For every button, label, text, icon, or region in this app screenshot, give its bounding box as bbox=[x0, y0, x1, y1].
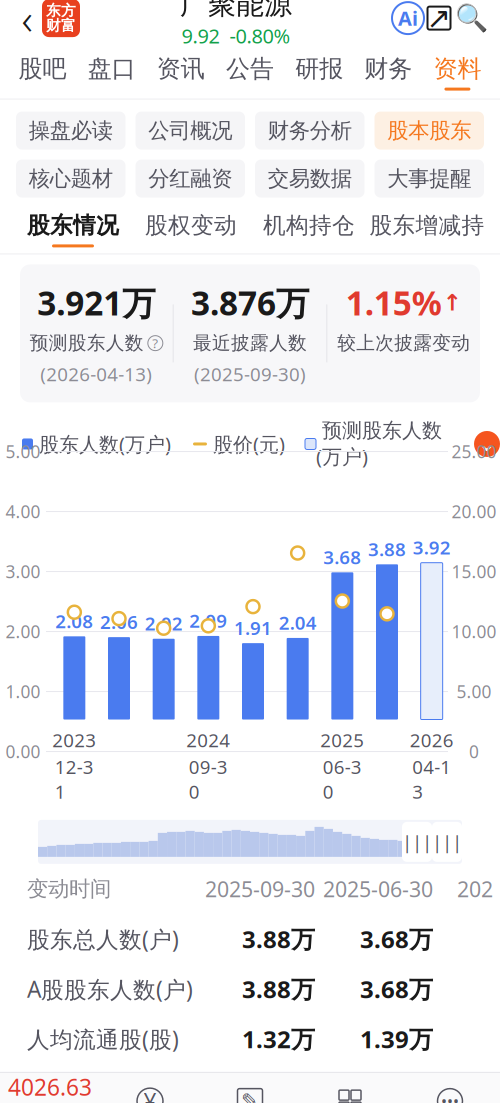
staticText: 10.00 bbox=[451, 620, 496, 643]
staticText: 预测股东人数(万户) bbox=[316, 418, 442, 469]
button[interactable]: Range handle right bbox=[432, 822, 462, 862]
button[interactable]: Range handle left bbox=[402, 822, 432, 862]
staticText: ‹ bbox=[21, 0, 32, 46]
button[interactable]: 股东情况 bbox=[14, 212, 132, 247]
staticText: ✎ bbox=[241, 1089, 259, 1103]
staticText: 股吧 bbox=[19, 54, 67, 84]
staticText: 机构持仓 bbox=[263, 212, 355, 239]
staticText: 3.876万 bbox=[191, 280, 309, 325]
staticText: 盘口 bbox=[88, 54, 136, 84]
button[interactable]: 机构持仓 bbox=[250, 212, 368, 247]
staticText: 核心题材 bbox=[29, 165, 113, 192]
button[interactable]: 公司概况 bbox=[135, 112, 245, 150]
staticText: 2025-09-30 bbox=[205, 875, 315, 903]
staticText: (2026-04-13) bbox=[40, 362, 152, 386]
staticText: 2.06 bbox=[100, 609, 138, 634]
staticText: 变动时间 bbox=[27, 876, 111, 902]
staticText: 12-31 bbox=[55, 754, 94, 804]
staticText: 3.68 bbox=[323, 544, 361, 569]
staticText: 3.88万 bbox=[242, 973, 315, 1005]
button[interactable]: 财务分析 bbox=[255, 112, 364, 150]
button[interactable]: ••• bbox=[400, 1089, 500, 1103]
staticText: 1.32万 bbox=[242, 1023, 315, 1055]
button[interactable]: 功能 bbox=[300, 1089, 400, 1103]
button[interactable]: AI assistant bbox=[392, 2, 424, 34]
button[interactable]: 资料 bbox=[423, 46, 492, 99]
button[interactable]: 研报 bbox=[285, 46, 354, 99]
button[interactable]: 交易数据 bbox=[255, 160, 364, 198]
staticText: 股东情况 bbox=[27, 212, 119, 239]
staticText: ↗ bbox=[426, 1, 451, 35]
staticText: 操盘必读 bbox=[29, 117, 113, 144]
staticText: 2024 bbox=[186, 727, 230, 752]
staticText: 股价(元) bbox=[207, 431, 285, 457]
staticText: 1.39万 bbox=[360, 1023, 433, 1055]
staticText: 股东增减持 bbox=[369, 212, 484, 239]
staticText: 公司概况 bbox=[148, 117, 232, 144]
button[interactable]: 公告 bbox=[215, 46, 284, 99]
staticText: 股东人数(万户) bbox=[33, 431, 171, 457]
staticText: ||| bbox=[402, 829, 432, 854]
button[interactable]: 股吧 bbox=[8, 46, 77, 99]
staticText: ¥ bbox=[143, 1086, 156, 1103]
staticText: 🔍 bbox=[454, 3, 487, 33]
staticText: A股股东人数(户) bbox=[27, 974, 193, 1004]
staticText: 东方 bbox=[46, 2, 76, 20]
staticText: 202 bbox=[457, 875, 493, 903]
staticText: 1.00 bbox=[5, 680, 40, 703]
staticText: 3.68万 bbox=[360, 923, 433, 955]
staticText: 20.00 bbox=[451, 500, 496, 523]
staticText: (2025-09-30) bbox=[194, 362, 306, 386]
staticText: 分红融资 bbox=[148, 165, 232, 192]
button[interactable]: ¥ bbox=[100, 1088, 200, 1103]
staticText: 2.08 bbox=[55, 608, 93, 633]
staticText: 4.00 bbox=[5, 500, 40, 523]
staticText: 3.88万 bbox=[242, 923, 315, 955]
staticText: 5.00 bbox=[456, 680, 491, 703]
button[interactable]: Search bbox=[454, 1, 488, 35]
button[interactable]: 股东增减持 bbox=[368, 212, 486, 247]
staticText: 09-30 bbox=[189, 754, 228, 804]
staticText: 2023 bbox=[52, 727, 96, 752]
button[interactable]: 操盘必读 bbox=[16, 112, 125, 150]
staticText: 股东总人数(户) bbox=[27, 924, 179, 954]
staticText: -0.80% bbox=[229, 22, 290, 49]
staticText: 公告 bbox=[226, 54, 274, 84]
staticText: 财务分析 bbox=[268, 117, 352, 144]
button[interactable]: 财务 bbox=[354, 46, 423, 99]
button[interactable]: Back bbox=[12, 0, 42, 40]
staticText: 财务 bbox=[364, 54, 412, 84]
staticText: ↑ bbox=[443, 290, 462, 315]
button[interactable]: 股本股东 bbox=[374, 112, 484, 150]
button[interactable]: ✎ bbox=[200, 1089, 300, 1103]
staticText: 最近披露人数 bbox=[193, 332, 307, 355]
staticText: ? bbox=[152, 334, 158, 352]
button[interactable]: Expand legend bbox=[474, 431, 500, 457]
staticText: ••• bbox=[441, 1090, 459, 1103]
staticText: 15.00 bbox=[451, 560, 496, 583]
staticText: 3.00 bbox=[5, 560, 40, 583]
button[interactable]: 资讯 bbox=[146, 46, 215, 99]
staticText: 研报 bbox=[295, 54, 343, 84]
staticText: 4026.63 bbox=[8, 1072, 92, 1102]
button[interactable]: Share bbox=[424, 3, 454, 33]
staticText: 资讯 bbox=[157, 54, 205, 84]
staticText: 股权变动 bbox=[145, 212, 237, 239]
staticText: 1.15% bbox=[346, 280, 442, 325]
staticText: 3.68万 bbox=[360, 973, 433, 1005]
staticText: 3.88 bbox=[368, 536, 406, 561]
button[interactable]: 分红融资 bbox=[135, 160, 245, 198]
button[interactable]: 股权变动 bbox=[132, 212, 250, 247]
staticText: 较上次披露变动 bbox=[337, 332, 470, 355]
staticText: Ai bbox=[398, 5, 418, 31]
staticText: 2025 bbox=[320, 727, 364, 752]
button[interactable]: 盘口 bbox=[77, 46, 146, 99]
staticText: 9.92 bbox=[181, 22, 219, 49]
button[interactable]: 4026.63 bbox=[0, 1072, 100, 1103]
staticText: 3.92 bbox=[413, 535, 451, 560]
staticText: 0 bbox=[469, 740, 479, 763]
staticText: 股本股东 bbox=[387, 117, 471, 144]
button[interactable]: 大事提醒 bbox=[374, 160, 484, 198]
button[interactable]: 东方财富 bbox=[42, 0, 80, 37]
button[interactable]: 核心题材 bbox=[16, 160, 125, 198]
